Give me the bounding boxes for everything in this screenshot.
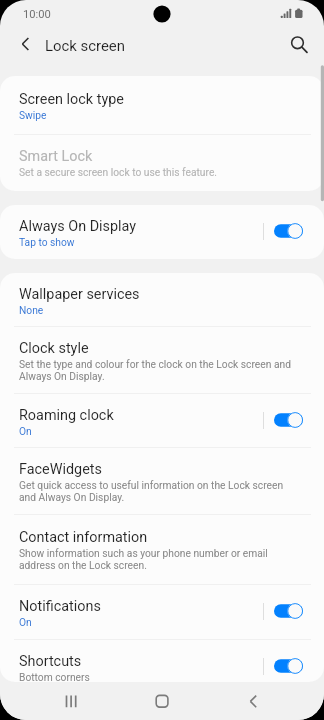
staticText: Contact information	[19, 529, 148, 546]
button[interactable]: Navigate up	[3, 28, 39, 64]
staticText: Swipe	[19, 109, 47, 121]
button[interactable]: Clock style	[0, 327, 324, 382]
button[interactable]: On	[274, 223, 303, 239]
staticText: Notifications	[19, 598, 101, 615]
button[interactable]: Always On Display	[0, 205, 324, 248]
button[interactable]: Search	[283, 28, 319, 64]
staticText: Wallpaper services	[19, 286, 140, 303]
button[interactable]: Notifications	[0, 585, 324, 628]
staticText: Set the type and colour for the clock on…	[19, 358, 291, 370]
staticText: Roaming clock	[19, 407, 114, 424]
staticText: 10:00	[23, 8, 51, 21]
staticText: Screen lock type	[19, 91, 124, 108]
staticText: Set a secure screen lock to use this fea…	[19, 166, 218, 178]
staticText: On	[19, 425, 32, 437]
staticText: Smart Lock	[19, 148, 93, 165]
staticText: FaceWidgets	[19, 461, 102, 478]
staticText: None	[19, 304, 44, 316]
staticText: Always On Display	[19, 218, 137, 235]
staticText: Clock style	[19, 340, 89, 357]
staticText: Tap to show	[19, 236, 75, 248]
button[interactable]: On	[274, 412, 303, 428]
staticText: and Always On Display.	[19, 491, 125, 503]
button[interactable]: Screen lock type	[0, 76, 324, 121]
staticText: Lock screen	[45, 37, 125, 54]
button[interactable]: Wallpaper services	[0, 273, 324, 316]
button[interactable]: On	[274, 603, 303, 619]
button[interactable]: Roaming clock	[0, 394, 324, 437]
staticText: Bottom corners	[19, 671, 90, 682]
staticText: Shortcuts	[19, 653, 82, 670]
button[interactable]: Home	[142, 682, 182, 720]
button[interactable]: Recent apps	[50, 682, 90, 720]
button[interactable]: Smart Lock	[0, 135, 324, 178]
staticText: On	[19, 616, 32, 628]
button[interactable]: FaceWidgets	[0, 448, 324, 503]
button[interactable]: On	[274, 658, 303, 674]
staticText: Always On Display.	[19, 370, 105, 382]
button[interactable]: Shortcuts	[0, 640, 324, 682]
staticText: address on the Lock screen.	[19, 559, 147, 571]
button[interactable]: Contact information	[0, 515, 324, 571]
staticText: Get quick access to useful information o…	[19, 479, 284, 491]
staticText: Show information such as your phone numb…	[19, 547, 268, 559]
button[interactable]: Back	[233, 682, 273, 720]
